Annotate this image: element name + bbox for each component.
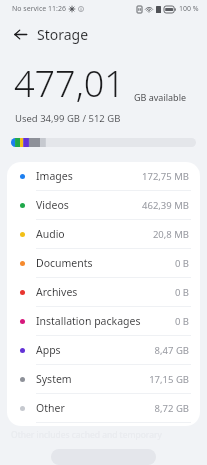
button[interactable]: Other [7,394,200,422]
button[interactable]: Archives [7,278,200,306]
button[interactable]: Apps [7,336,200,364]
staticText: 172,75 MB [77,170,189,183]
staticText: Videos [36,198,69,212]
staticText: Archives [36,285,78,299]
staticText: 17,15 GB [76,373,189,386]
button[interactable]: Audio [7,220,200,248]
staticText: Images [36,169,73,183]
staticText: 477,01 [14,59,125,108]
staticText: Installation packages [36,314,141,328]
staticText: 8,47 GB [65,344,189,357]
button[interactable]: Images [7,162,200,190]
staticText: 0 B [145,315,189,328]
staticText: 100 % [179,4,199,14]
staticText: GB available [134,91,187,103]
staticText: No service 11:26 [12,4,66,14]
button[interactable]: System [7,365,200,393]
staticText: 0 B [82,286,189,299]
staticText: Other [36,401,65,415]
button[interactable]: Videos [7,191,200,219]
button[interactable]: Installation packages [7,307,200,335]
staticText: System [36,372,72,386]
staticText: Documents [36,256,93,270]
staticText: Apps [36,343,61,357]
staticText: 20,8 MB [69,228,189,241]
staticText: Used 34,99 GB / 512 GB [15,112,121,125]
staticText: 8,72 GB [69,402,189,415]
staticText: 0 B [97,257,189,270]
button[interactable]: Documents [7,249,200,277]
staticText: 462,39 MB [73,199,189,212]
staticText: Storage [37,25,89,44]
button[interactable]: Back [7,21,33,47]
staticText: Audio [36,227,65,241]
